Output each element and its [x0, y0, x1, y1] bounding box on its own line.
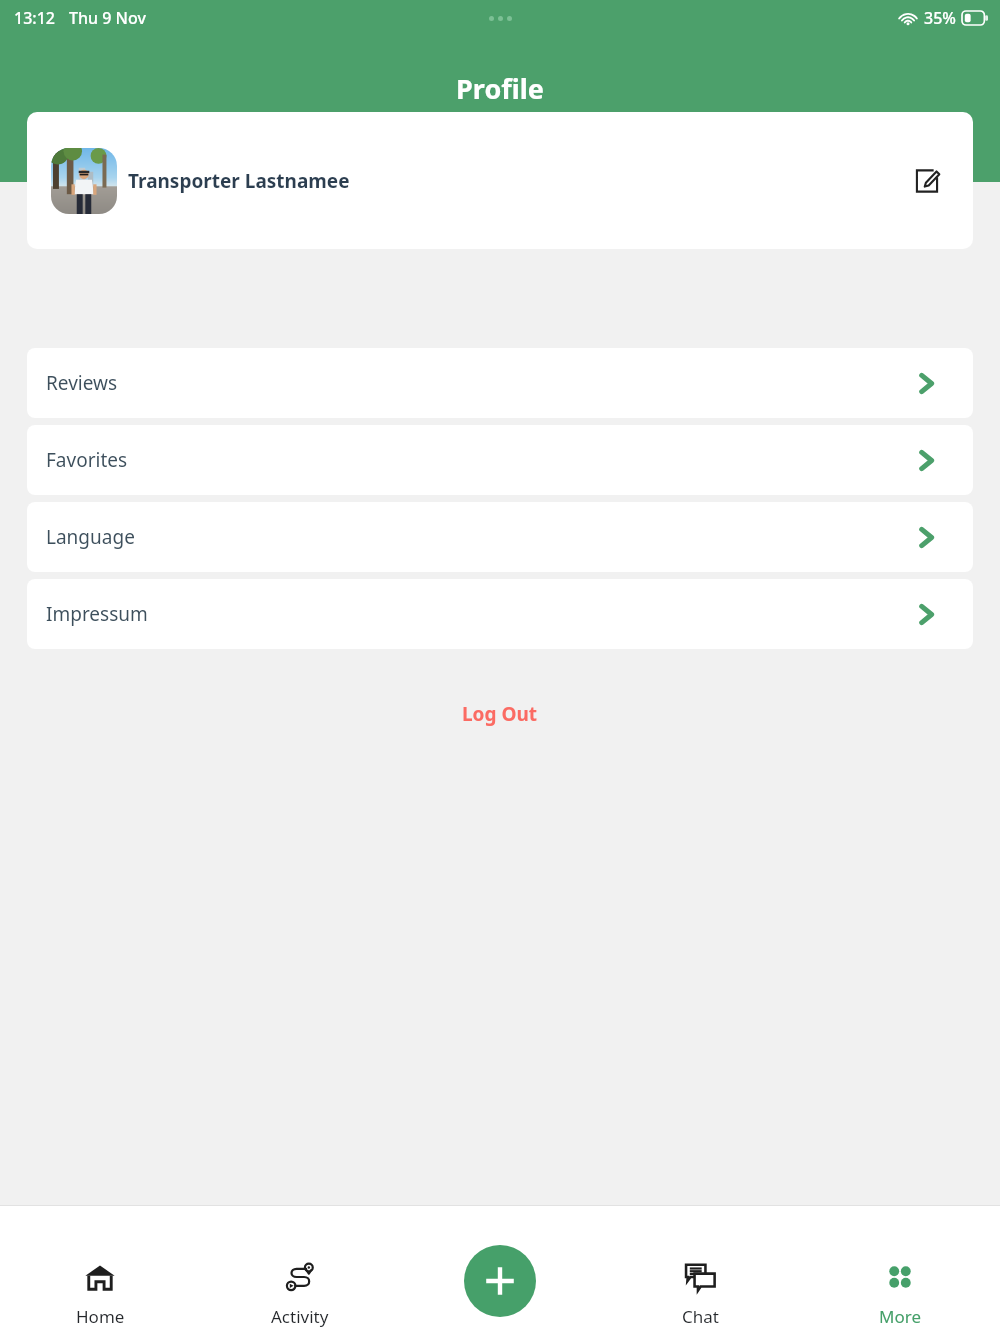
- button[interactable]: Impressum: [27, 579, 973, 649]
- staticText: Log Out: [462, 701, 538, 727]
- staticText: Chat: [682, 1305, 719, 1328]
- button[interactable]: Add: [464, 1245, 536, 1317]
- staticText: 13:12: [14, 7, 55, 29]
- staticText: Transporter Lastnamee: [128, 168, 350, 194]
- staticText: Reviews: [46, 370, 118, 396]
- button[interactable]: Edit profile: [905, 159, 949, 203]
- staticText: Impressum: [46, 601, 148, 627]
- staticText: 35%: [924, 7, 956, 29]
- button[interactable]: Activity: [200, 1206, 400, 1334]
- button[interactable]: Log Out: [442, 693, 558, 735]
- staticText: Favorites: [46, 447, 128, 473]
- button[interactable]: More: [800, 1206, 1000, 1334]
- staticText: Profile: [456, 70, 544, 107]
- button[interactable]: Transporter Lastnamee: [27, 112, 973, 249]
- button[interactable]: Reviews: [27, 348, 973, 418]
- staticText: Language: [46, 524, 135, 550]
- staticText: Home: [76, 1305, 125, 1328]
- button[interactable]: Chat: [600, 1206, 800, 1334]
- button[interactable]: Home: [0, 1206, 200, 1334]
- staticText: Thu 9 Nov: [69, 7, 146, 29]
- button[interactable]: Favorites: [27, 425, 973, 495]
- button[interactable]: Language: [27, 502, 973, 572]
- staticText: Activity: [271, 1305, 329, 1328]
- staticText: More: [879, 1305, 921, 1328]
